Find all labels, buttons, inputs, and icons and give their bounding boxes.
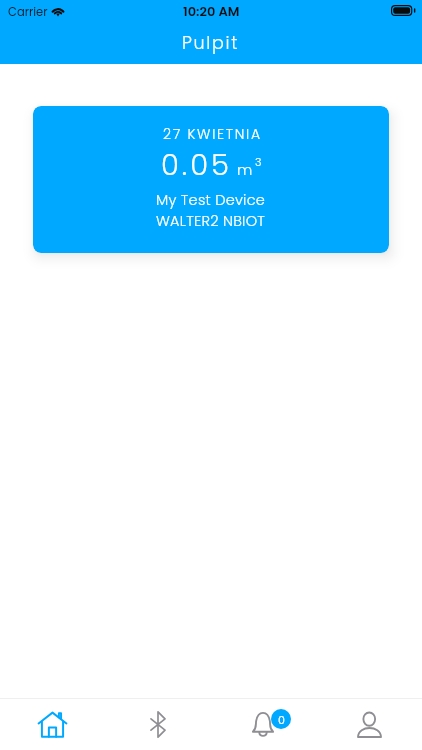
button[interactable]: Home — [0, 698, 105, 750]
staticText: My Test Device — [156, 190, 266, 210]
button[interactable]: Notifications — [210, 698, 316, 750]
staticText: 0 — [278, 712, 285, 727]
button[interactable]: Profile — [316, 698, 422, 750]
staticText: Pulpit — [182, 31, 240, 56]
button[interactable]: 27 KWIETNIA — [33, 106, 389, 253]
staticText: Carrier — [8, 4, 48, 20]
staticText: 3 — [255, 154, 262, 169]
staticText: m — [237, 159, 253, 180]
button[interactable]: Bluetooth — [105, 698, 210, 750]
staticText: WALTER2 NBIOT — [156, 211, 266, 231]
staticText: 27 KWIETNIA — [163, 124, 262, 144]
staticText: 0.05 — [161, 145, 232, 186]
staticText: 10:20 AM — [183, 2, 240, 20]
